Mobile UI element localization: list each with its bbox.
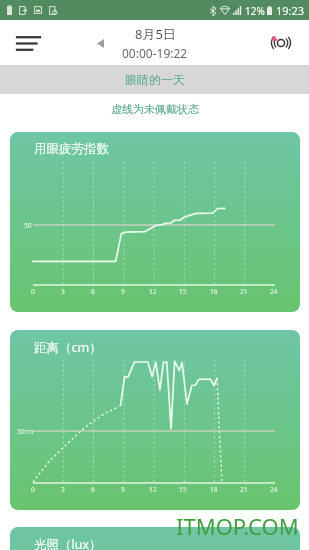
staticText: 19:23 [276,3,305,18]
staticText: 6 [91,287,95,296]
staticText: 8月5日 [135,25,176,43]
staticText: 18 [210,287,218,296]
button[interactable]: 光照（lux） [10,527,300,550]
staticText: 30cm [17,427,34,436]
staticText: 虚线为未佩戴状态 [111,102,199,116]
staticText: 9 [121,485,125,494]
staticText: 21 [240,485,248,494]
staticText: 光照（lux） [34,536,102,550]
staticText: 12 [149,287,157,296]
staticText: 15 [179,287,187,296]
staticText: 3 [61,485,65,494]
staticText: 12% [245,4,265,18]
button[interactable]: Previous day [87,30,113,56]
staticText: ITMOP.COM [176,511,299,541]
staticText: 00:00-19:22 [122,45,188,61]
staticText: 距离（cm） [34,339,102,356]
staticText: 3 [61,287,65,296]
staticText: 24 [270,485,278,494]
staticText: 18 [210,485,218,494]
button[interactable]: 距离（cm） [10,330,300,510]
button[interactable]: Menu [11,26,45,60]
staticText: 15 [179,485,187,494]
staticText: 眼睛的一天 [125,72,185,87]
staticText: 12 [149,485,157,494]
staticText: 0 [31,485,35,494]
staticText: 24 [270,287,278,296]
staticText: 用眼疲劳指数 [34,141,109,157]
staticText: 0 [31,287,35,296]
button[interactable]: Device connection [264,26,298,60]
staticText: 21 [240,287,248,296]
staticText: 6 [91,485,95,494]
staticText: 9 [121,287,125,296]
button[interactable]: 用眼疲劳指数 [10,132,300,312]
button[interactable]: 眼睛的一天 [0,65,309,94]
staticText: 50 [24,221,32,230]
